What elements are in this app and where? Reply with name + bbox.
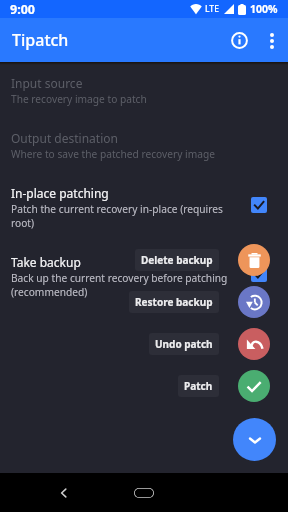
staticText: Where to save the patched recovery image [11,147,215,161]
staticText: Undo patch [155,337,213,351]
button[interactable]: Restore backup [129,291,219,313]
button[interactable]: Close menu [233,418,276,461]
staticText: Patch [184,379,213,393]
button[interactable]: Take backup [0,242,288,311]
staticText: LTE [205,3,219,15]
button[interactable]: Output destination [0,118,288,173]
staticText: In-place patching [11,185,109,201]
button[interactable]: Toggle Take backup [251,266,267,282]
button[interactable]: Restore backup [238,286,270,318]
button[interactable]: About [224,25,255,56]
staticText: 100% [250,2,278,16]
staticText: Patch the current recovery in-place (req… [11,202,248,230]
button[interactable]: Toggle In-place patching [251,197,267,213]
staticText: Delete backup [141,253,213,267]
button[interactable]: Delete backup [135,249,219,271]
button[interactable]: Input source [0,63,288,118]
staticText: Back up the current recovery before patc… [11,271,248,299]
staticText: Input source [11,75,83,91]
button[interactable]: Patch [238,370,270,402]
staticText: Take backup [11,254,81,270]
button[interactable]: Undo patch [238,328,270,360]
button[interactable]: Undo patch [149,333,219,355]
button[interactable]: In-place patching [0,173,288,242]
staticText: 9:00 [10,1,35,18]
staticText: Output destination [11,130,118,146]
button[interactable]: Delete backup [238,244,270,276]
button[interactable]: Patch [178,375,219,397]
staticText: Restore backup [135,295,213,309]
button[interactable]: More options [255,24,288,57]
staticText: The recovery image to patch [11,92,147,106]
staticText: Tipatch [12,29,69,51]
